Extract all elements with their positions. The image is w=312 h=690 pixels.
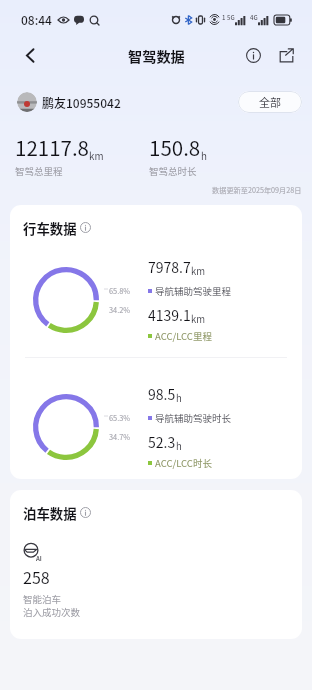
staticText: km [191, 312, 206, 326]
staticText: 5G [227, 13, 235, 22]
button[interactable]: Back [18, 43, 42, 67]
staticText: 4G [250, 13, 258, 22]
staticText: AI [36, 554, 42, 563]
staticText: 4139.1 [148, 305, 191, 325]
staticText: 行车数据 [23, 218, 77, 237]
staticText: 泊车数据 [23, 503, 77, 522]
staticText: 智能泊车 [23, 592, 62, 606]
staticText: 鹏友10955042 [42, 94, 121, 111]
button[interactable]: 全部 [238, 91, 302, 113]
staticText: 34.7% [109, 431, 131, 442]
staticText: ACC/LCC时长 [155, 456, 212, 470]
staticText: 150.8 [149, 132, 201, 162]
staticText: 智驾总里程 [15, 164, 63, 178]
staticText: 52.3 [148, 432, 176, 452]
staticText: h [201, 149, 207, 163]
button[interactable]: Info [241, 43, 265, 67]
staticText: 导航辅助驾驶里程 [155, 284, 232, 298]
staticText: 1 [222, 13, 226, 22]
staticText: 泊入成功次数 [23, 605, 81, 619]
staticText: 34.2% [109, 304, 131, 315]
staticText: km [191, 264, 206, 278]
staticText: 12117.8 [15, 132, 89, 162]
button[interactable]: Share [274, 43, 298, 67]
staticText: 258 [23, 565, 50, 588]
staticText: 65.3% [109, 412, 131, 423]
staticText: 智驾数据 [128, 46, 185, 67]
staticText: 数据更新至2025年09月28日 [212, 185, 302, 195]
staticText: 导航辅助驾驶时长 [155, 411, 232, 425]
staticText: 65.8% [109, 285, 131, 296]
staticText: 08:44 [21, 11, 52, 28]
staticText: 7978.7 [148, 257, 191, 277]
staticText: h [176, 439, 182, 453]
staticText: km [89, 149, 104, 163]
staticText: 98.5 [148, 384, 176, 404]
staticText: 全部 [259, 94, 281, 110]
staticText: 智驾总时长 [149, 164, 197, 178]
staticText: ACC/LCC里程 [155, 329, 212, 343]
staticText: h [176, 391, 182, 405]
